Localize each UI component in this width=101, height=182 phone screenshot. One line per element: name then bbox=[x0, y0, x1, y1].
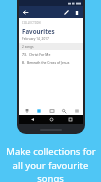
staticText: Favourites bbox=[22, 27, 55, 35]
staticText: all your favourite songs bbox=[0, 159, 101, 182]
staticText: Beneath the Cross of Jesus bbox=[27, 60, 70, 65]
button[interactable]: Recent apps bbox=[64, 115, 76, 124]
button[interactable]: More options bbox=[72, 8, 81, 17]
button[interactable]: Back bbox=[26, 115, 38, 124]
button[interactable]: 73. bbox=[19, 50, 83, 58]
button[interactable]: Collections bbox=[33, 106, 44, 115]
staticText: 8. bbox=[22, 60, 25, 65]
staticText: 2 songs bbox=[22, 45, 34, 49]
staticText: Make collections for bbox=[6, 145, 96, 158]
button[interactable]: Search bbox=[58, 106, 69, 115]
button[interactable]: 2 songs bbox=[19, 43, 83, 50]
button[interactable]: Home bbox=[45, 115, 57, 124]
staticText: COLLECTION bbox=[22, 21, 41, 25]
button[interactable]: 8. bbox=[19, 58, 83, 66]
staticText: February 14, 2017 bbox=[22, 37, 49, 41]
button[interactable]: Back bbox=[21, 8, 30, 17]
button[interactable]: Library bbox=[46, 106, 57, 115]
button[interactable]: Settings bbox=[71, 106, 82, 115]
button[interactable]: Edit bbox=[62, 8, 71, 17]
button[interactable]: Songs bbox=[21, 106, 32, 115]
staticText: Christ For Me bbox=[29, 52, 51, 57]
button[interactable]: COLLECTION bbox=[19, 18, 83, 43]
staticText: 73. bbox=[22, 52, 27, 57]
